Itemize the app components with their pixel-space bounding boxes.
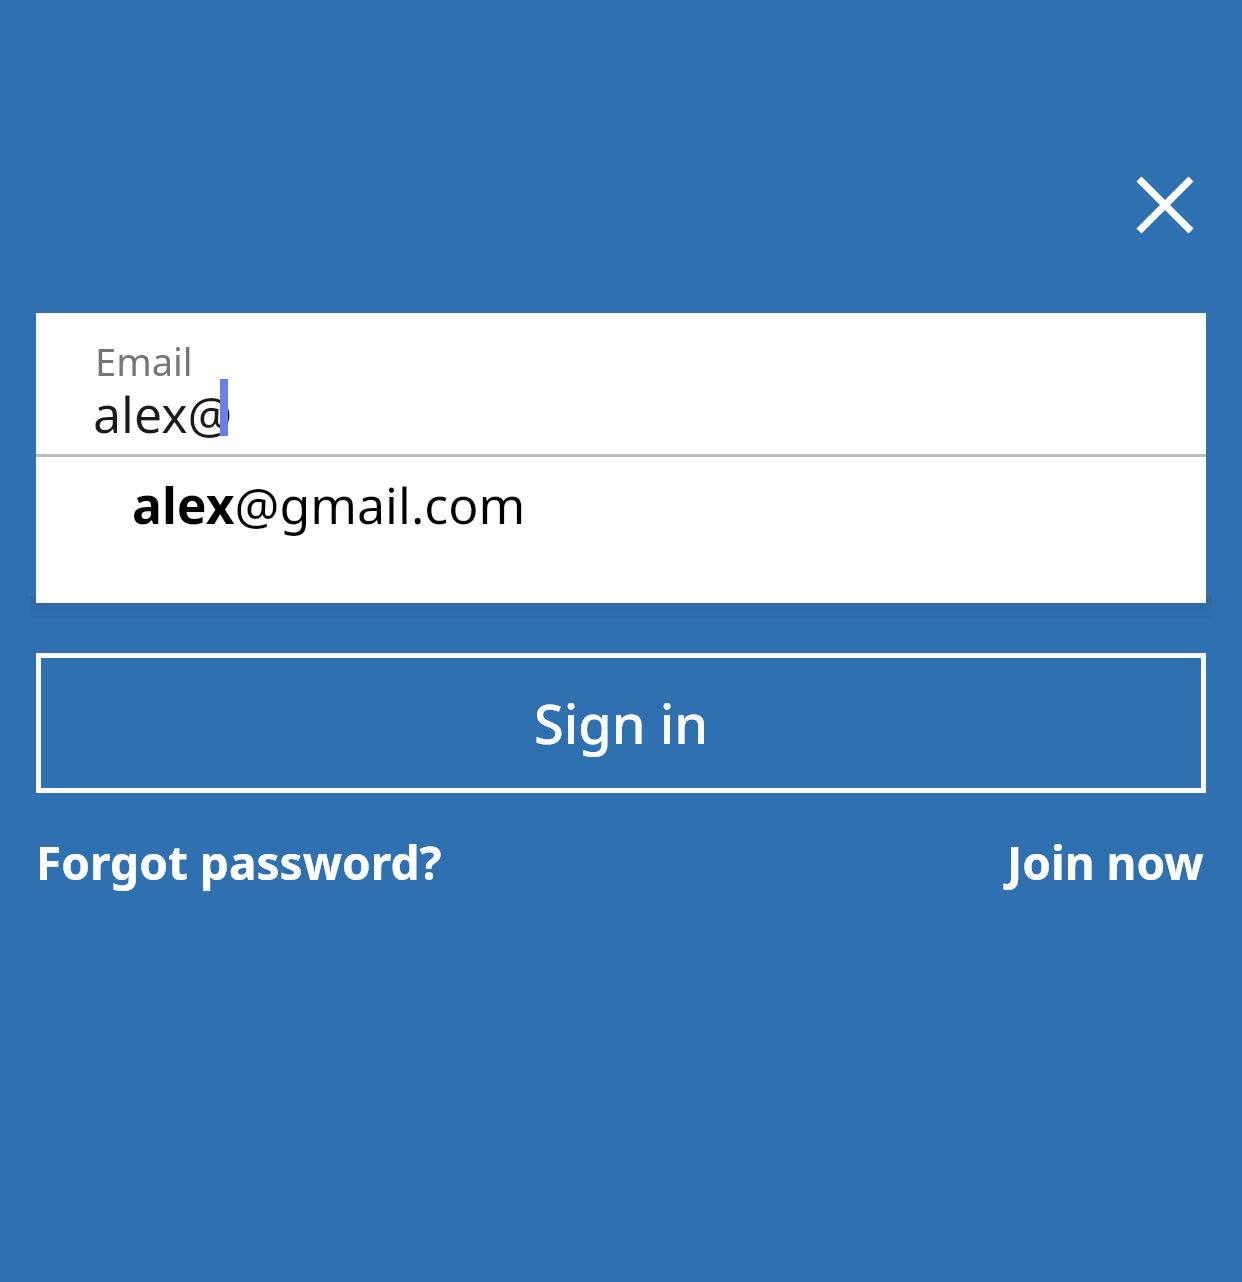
button[interactable]: Join now — [1007, 831, 1204, 894]
button[interactable]: Close — [1115, 155, 1215, 255]
button[interactable]: Email — [36, 313, 1206, 454]
button[interactable]: alex@gmail.com — [36, 457, 1206, 549]
staticText: alex@ — [93, 380, 233, 448]
button[interactable]: Forgot password? — [36, 831, 442, 894]
staticText: Forgot password? — [36, 831, 442, 894]
staticText: Sign in — [534, 686, 709, 760]
staticText: Join now — [1007, 831, 1204, 894]
staticText: Email — [95, 335, 193, 387]
button[interactable]: Sign in — [36, 653, 1206, 793]
staticText: alex@gmail.com — [132, 471, 526, 539]
